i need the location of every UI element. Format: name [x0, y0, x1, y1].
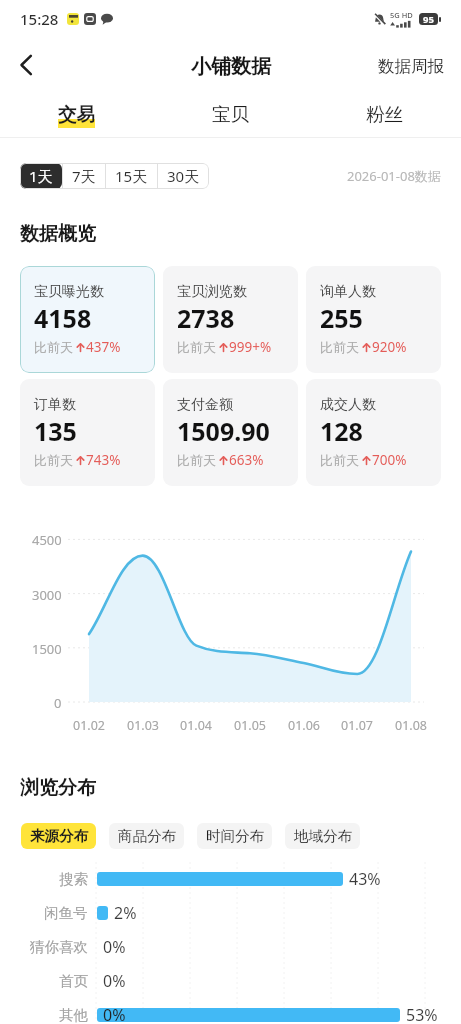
button[interactable]: 来源分布: [21, 823, 96, 849]
staticText: 闲鱼号: [44, 904, 88, 922]
staticText: 5G HD: [390, 10, 413, 20]
button[interactable]: 粉丝: [307, 90, 461, 138]
staticText: 95: [423, 13, 434, 25]
staticText: 宝贝: [212, 103, 249, 126]
button[interactable]: 30天: [158, 163, 209, 189]
staticText: 询单人数: [320, 283, 376, 301]
staticText: 支付金额: [177, 396, 233, 414]
button[interactable]: 交易: [0, 90, 153, 138]
button[interactable]: 宝贝: [153, 90, 307, 138]
staticText: 比前天: [34, 339, 73, 355]
staticText: 30天: [167, 166, 200, 186]
staticText: 宝贝浏览数: [177, 283, 247, 301]
staticText: 时间分布: [206, 827, 264, 845]
staticText: 2%: [114, 902, 137, 924]
staticText: 0%: [103, 1004, 126, 1024]
staticText: 01.02: [73, 717, 105, 734]
button[interactable]: Back: [6, 44, 48, 86]
staticText: 01.07: [341, 717, 373, 734]
staticText: 地域分布: [294, 827, 352, 845]
staticText: 700%: [372, 451, 407, 469]
staticText: 成交人数: [320, 396, 376, 414]
staticText: 小铺数据: [191, 54, 271, 79]
staticText: 437%: [86, 338, 121, 356]
staticText: 743%: [86, 451, 121, 469]
staticText: 商品分布: [118, 827, 176, 845]
button[interactable]: 宝贝曝光数: [20, 266, 155, 373]
staticText: 猜你喜欢: [30, 938, 88, 956]
staticText: 01.06: [288, 717, 320, 734]
staticText: 135: [34, 414, 77, 448]
staticText: 比前天: [320, 339, 359, 355]
staticText: 920%: [372, 338, 407, 356]
button[interactable]: 15天: [106, 163, 157, 189]
staticText: 01.04: [180, 717, 212, 734]
staticText: 浏览分布: [20, 776, 96, 800]
staticText: 43%: [349, 868, 381, 890]
staticText: 999+%: [229, 338, 272, 356]
staticText: 2738: [177, 301, 235, 335]
staticText: 0%: [103, 936, 126, 958]
button[interactable]: 时间分布: [197, 823, 272, 849]
button[interactable]: 地域分布: [285, 823, 360, 849]
staticText: 比前天: [34, 452, 73, 468]
staticText: 7天: [72, 166, 96, 186]
staticText: 255: [320, 301, 363, 335]
staticText: 0: [54, 694, 62, 712]
button[interactable]: 订单数: [20, 379, 155, 486]
button[interactable]: 数据周报: [360, 48, 461, 85]
staticText: 比前天: [177, 339, 216, 355]
staticText: 128: [320, 414, 363, 448]
button[interactable]: 7天: [63, 163, 105, 189]
staticText: 比前天: [320, 452, 359, 468]
staticText: 宝贝曝光数: [34, 283, 104, 301]
button[interactable]: 询单人数: [306, 266, 441, 373]
staticText: 2026-01-08数据: [347, 167, 441, 185]
staticText: 15天: [115, 166, 148, 186]
staticText: 01.08: [395, 717, 427, 734]
staticText: 数据周报: [378, 56, 444, 77]
staticText: 1天: [29, 166, 53, 186]
staticText: 3000: [32, 586, 62, 604]
staticText: 订单数: [34, 396, 76, 414]
staticText: 粉丝: [366, 103, 403, 126]
staticText: 其他: [59, 1006, 88, 1024]
staticText: 1500: [32, 640, 62, 658]
button[interactable]: 成交人数: [306, 379, 441, 486]
staticText: 数据概览: [20, 222, 96, 246]
staticText: 首页: [59, 972, 88, 990]
staticText: 4158: [34, 301, 92, 335]
staticText: 53%: [406, 1004, 438, 1024]
staticText: 01.05: [234, 717, 266, 734]
staticText: 15:28: [20, 9, 59, 29]
button[interactable]: 1天: [20, 163, 62, 189]
staticText: 01.03: [127, 717, 159, 734]
button[interactable]: 支付金额: [163, 379, 298, 486]
staticText: 比前天: [177, 452, 216, 468]
staticText: 来源分布: [30, 827, 88, 845]
button[interactable]: 商品分布: [109, 823, 184, 849]
staticText: 搜索: [59, 870, 88, 888]
staticText: 4500: [32, 531, 62, 549]
staticText: 0%: [103, 970, 126, 992]
staticText: 交易: [58, 103, 95, 126]
staticText: 1509.90: [177, 414, 270, 448]
button[interactable]: 宝贝浏览数: [163, 266, 298, 373]
staticText: 663%: [229, 451, 264, 469]
